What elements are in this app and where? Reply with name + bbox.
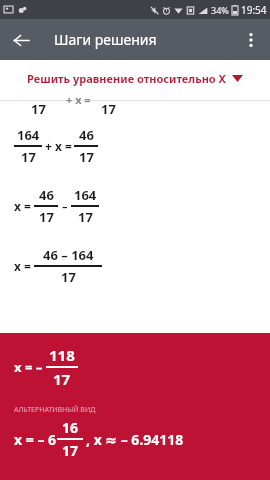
staticText: 17	[53, 369, 71, 389]
button[interactable]: 164	[14, 126, 270, 166]
staticText: 34%	[211, 4, 229, 16]
button[interactable]: Back	[6, 25, 36, 55]
button[interactable]: Решить уравнение относительно X	[27, 71, 243, 86]
staticText: 17	[21, 148, 36, 166]
staticText: x =	[14, 198, 31, 214]
button[interactable]: x = – 6	[14, 418, 270, 460]
staticText: 17	[61, 268, 76, 286]
staticText: x = –	[14, 358, 43, 376]
staticText: Шаги решения	[54, 30, 157, 49]
staticText: + x =	[45, 138, 72, 154]
staticText: 164	[74, 186, 97, 204]
button[interactable]: x =	[14, 186, 270, 226]
staticText: 17	[78, 208, 93, 226]
staticText: 16	[62, 418, 79, 437]
staticText: 46	[79, 126, 94, 144]
staticText: 17	[39, 208, 54, 226]
button[interactable]: x = –	[14, 345, 270, 389]
staticText: АЛЬТЕРНАТИВНЫЙ ВИД	[14, 405, 96, 415]
staticText: 17	[31, 100, 46, 116]
button[interactable]: x =	[14, 246, 270, 286]
staticText: 46	[39, 186, 54, 204]
staticText: Решить уравнение относительно X	[27, 71, 226, 86]
staticText: x =	[14, 258, 31, 274]
staticText: x = – 6	[14, 430, 57, 449]
staticText: + x =	[66, 92, 91, 107]
staticText: 164	[17, 126, 40, 144]
button[interactable]: + x =	[0, 101, 270, 117]
staticText: 118	[49, 345, 75, 365]
staticText: 46 – 164	[43, 246, 94, 264]
staticText: 19:54	[241, 3, 267, 17]
staticText: , x ≈ – 6.94118	[86, 430, 184, 449]
button[interactable]: More options	[236, 25, 266, 55]
staticText: 17	[79, 148, 94, 166]
staticText: –	[62, 199, 68, 214]
staticText: 17	[101, 100, 116, 116]
staticText: 17	[62, 441, 79, 460]
